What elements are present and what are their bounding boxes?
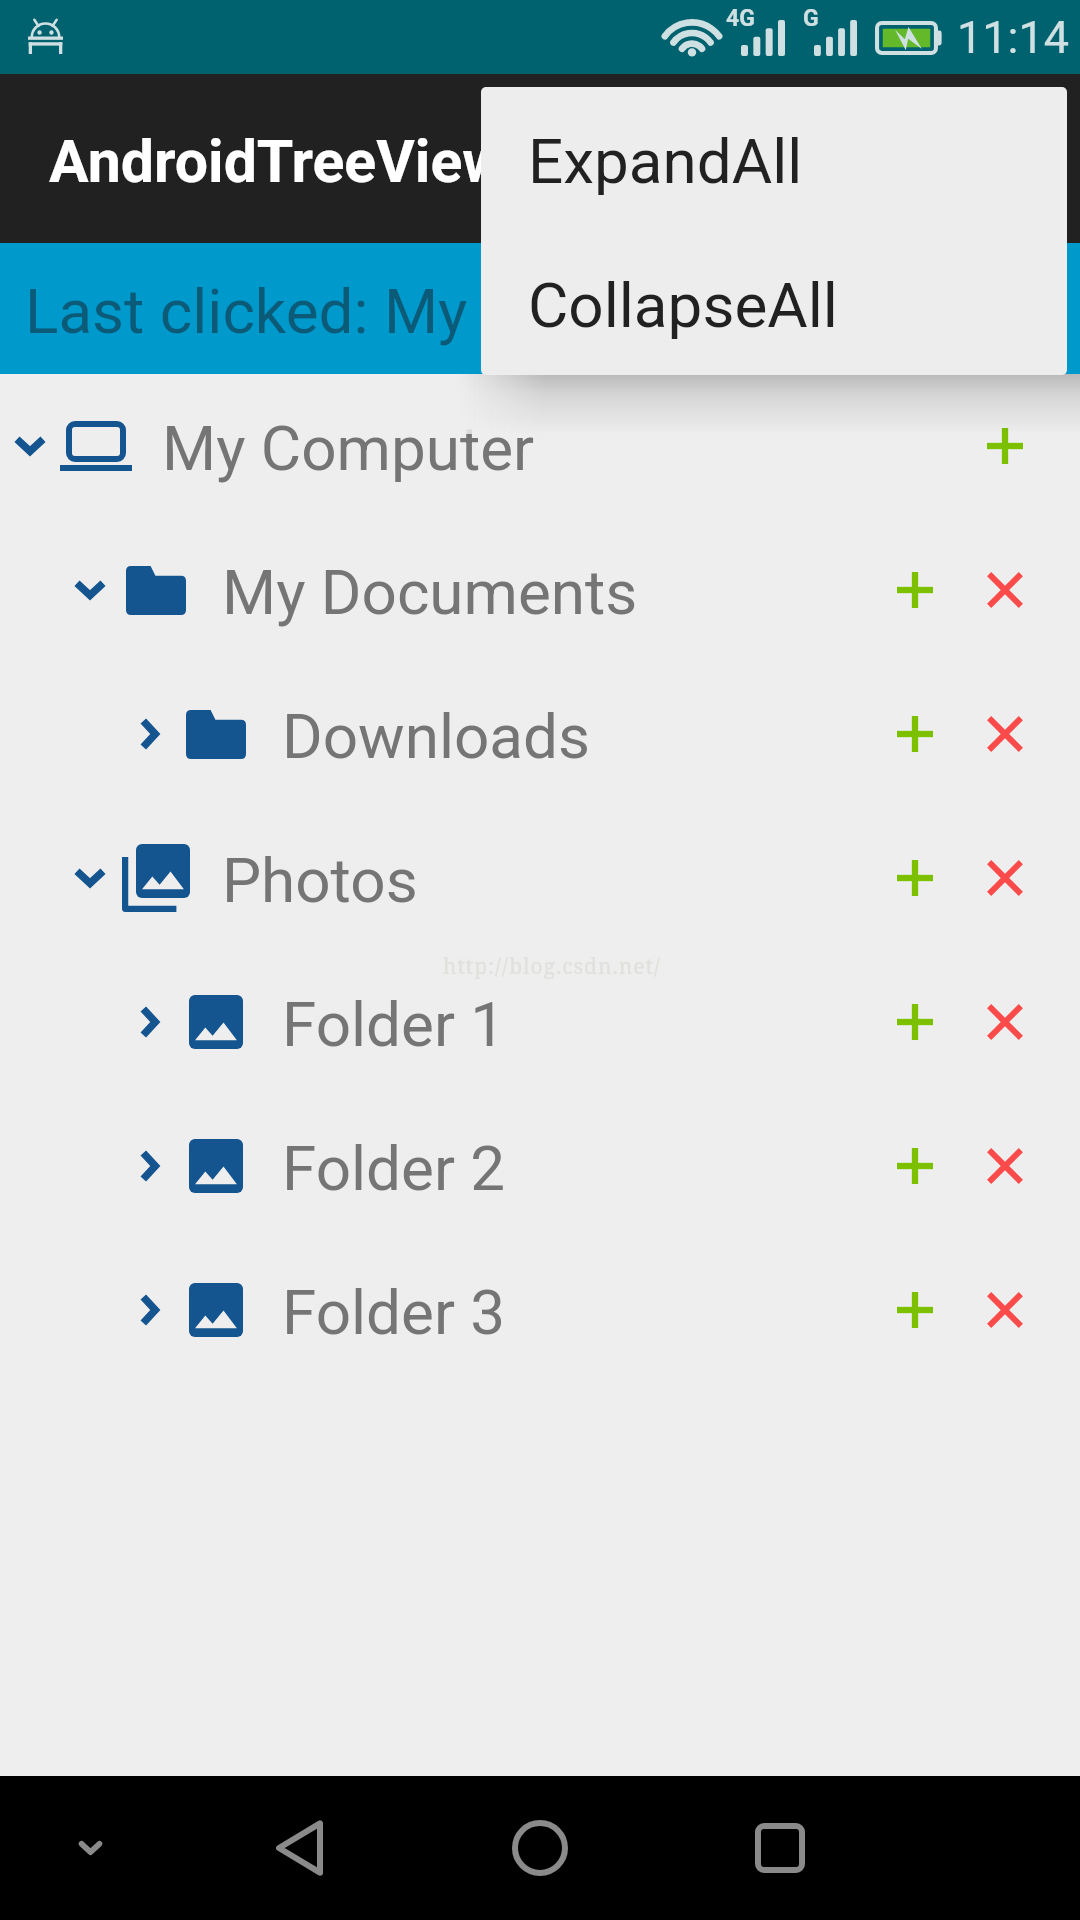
button[interactable]: Home bbox=[485, 1793, 595, 1903]
button[interactable]: Delete node bbox=[960, 662, 1050, 806]
staticText: 4G bbox=[726, 5, 755, 32]
staticText: AndroidTreeView bbox=[49, 127, 506, 196]
button[interactable]: Delete node bbox=[960, 1238, 1050, 1382]
staticText: My Computer bbox=[162, 412, 535, 485]
button[interactable]: Expand Downloads bbox=[120, 662, 180, 806]
button[interactable]: Delete node bbox=[960, 806, 1050, 950]
staticText: G bbox=[803, 5, 819, 32]
button[interactable]: Collapse My Computer bbox=[0, 374, 60, 518]
button[interactable]: Expand Folder 3 bbox=[120, 1238, 180, 1382]
staticText: My Documents bbox=[222, 556, 638, 629]
button[interactable]: Collapse Photos bbox=[0, 806, 1080, 950]
staticText: Folder 2 bbox=[282, 1132, 506, 1205]
button[interactable]: Delete node bbox=[960, 950, 1050, 1094]
button[interactable]: Add child node bbox=[870, 1094, 960, 1238]
button[interactable]: Add child node bbox=[870, 662, 960, 806]
button[interactable]: Expand Folder 1 bbox=[0, 950, 1080, 1094]
button[interactable]: Add child node bbox=[870, 1238, 960, 1382]
button[interactable]: ExpandAll bbox=[481, 87, 1067, 231]
button[interactable]: Expand Folder 2 bbox=[0, 1094, 1080, 1238]
button[interactable]: Recent apps bbox=[725, 1793, 835, 1903]
button[interactable]: CollapseAll bbox=[481, 231, 1067, 375]
button[interactable]: Expand Folder 3 bbox=[0, 1238, 1080, 1382]
button[interactable]: Add child node bbox=[870, 806, 960, 950]
button[interactable]: Expand Folder 1 bbox=[120, 950, 180, 1094]
button[interactable]: Back bbox=[245, 1793, 355, 1903]
button[interactable]: More options bbox=[936, 74, 1080, 243]
button[interactable]: Collapse My Computer bbox=[0, 374, 1080, 518]
staticText: Downloads bbox=[282, 700, 591, 773]
button[interactable]: Delete node bbox=[960, 1094, 1050, 1238]
staticText: Folder 1 bbox=[282, 988, 506, 1061]
button[interactable]: Collapse My Documents bbox=[0, 518, 1080, 662]
staticText: http://blog.csdn.net/ bbox=[443, 952, 661, 981]
button[interactable]: Hide keyboard bbox=[45, 1803, 135, 1893]
staticText: Last clicked: My Computer bbox=[25, 275, 756, 348]
staticText: Folder 3 bbox=[282, 1276, 506, 1349]
button[interactable]: Collapse My Documents bbox=[60, 518, 120, 662]
button[interactable]: Add child node bbox=[870, 518, 960, 662]
button[interactable]: AndroidTreeView bbox=[0, 74, 1080, 243]
button[interactable]: Expand Folder 2 bbox=[120, 1094, 180, 1238]
button[interactable]: Expand Downloads bbox=[0, 662, 1080, 806]
button[interactable]: Collapse Photos bbox=[60, 806, 120, 950]
staticText: CollapseAll bbox=[528, 269, 838, 342]
button[interactable]: Delete node bbox=[960, 518, 1050, 662]
staticText: ExpandAll bbox=[528, 125, 803, 198]
button[interactable]: Add child node bbox=[960, 374, 1050, 518]
button[interactable]: Add child node bbox=[870, 950, 960, 1094]
staticText: 11:14 bbox=[957, 11, 1070, 64]
staticText: Photos bbox=[222, 844, 418, 917]
